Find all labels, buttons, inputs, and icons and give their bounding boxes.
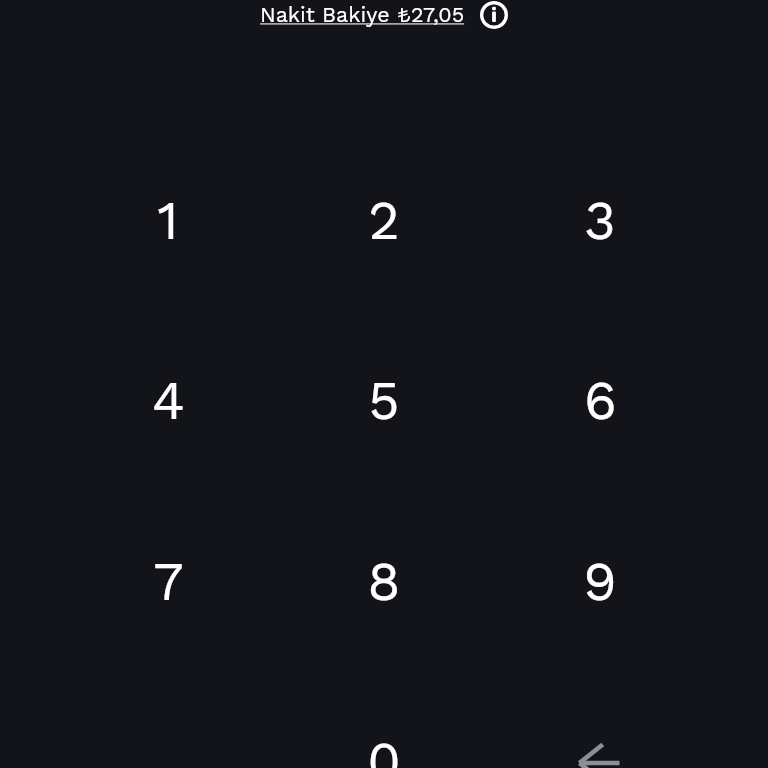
button[interactable]: 7 [98, 521, 238, 641]
staticText: 1 [157, 189, 179, 252]
button[interactable]: 3 [530, 160, 670, 280]
button[interactable]: 8 [314, 521, 454, 641]
staticText: 3 [584, 189, 616, 252]
staticText: Nakit Bakiye ₺27,05 [260, 2, 465, 27]
staticText: 5 [368, 369, 400, 432]
staticText: 6 [584, 369, 617, 432]
button[interactable]: 1 [98, 160, 238, 280]
staticText: 0 [367, 730, 401, 768]
button[interactable]: 2 [314, 160, 454, 280]
button[interactable]: Bakiye bilgisi [479, 1, 509, 29]
button[interactable]: Nakit Bakiye ₺27,05 [260, 2, 465, 27]
button[interactable]: 4 [98, 340, 238, 460]
staticText: 2 [368, 189, 400, 252]
button[interactable]: 9 [530, 521, 670, 641]
button[interactable]: 6 [530, 340, 670, 460]
button[interactable]: 0 [314, 701, 454, 768]
staticText: 7 [153, 550, 184, 613]
staticText: 4 [152, 369, 185, 432]
button[interactable]: 5 [314, 340, 454, 460]
staticText: 8 [367, 550, 401, 613]
button[interactable]: Sil [530, 701, 670, 768]
staticText: 9 [583, 550, 617, 613]
